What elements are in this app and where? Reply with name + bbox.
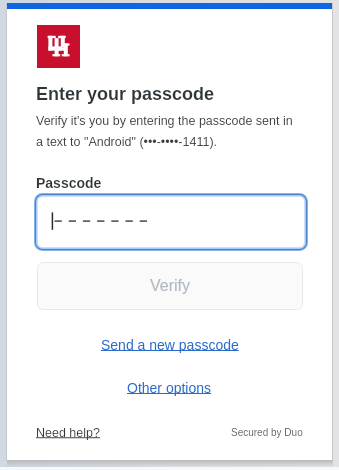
staticText: Send a new passcode [101,337,239,353]
staticText: Verify it's you by entering the passcode… [36,114,298,148]
button[interactable]: Need help? [36,426,100,440]
button[interactable] [34,193,308,251]
other: University of Houston [37,25,80,68]
button[interactable]: Send a new passcode [101,337,239,353]
staticText: Secured by Duo [231,427,303,438]
button[interactable]: Verify [37,262,303,310]
staticText: Need help? [36,426,100,440]
staticText: Verify [150,277,191,295]
staticText: Other options [127,380,212,396]
button[interactable]: Other options [127,380,212,396]
staticText: Passcode [36,175,102,191]
staticText: Enter your passcode [36,84,215,104]
